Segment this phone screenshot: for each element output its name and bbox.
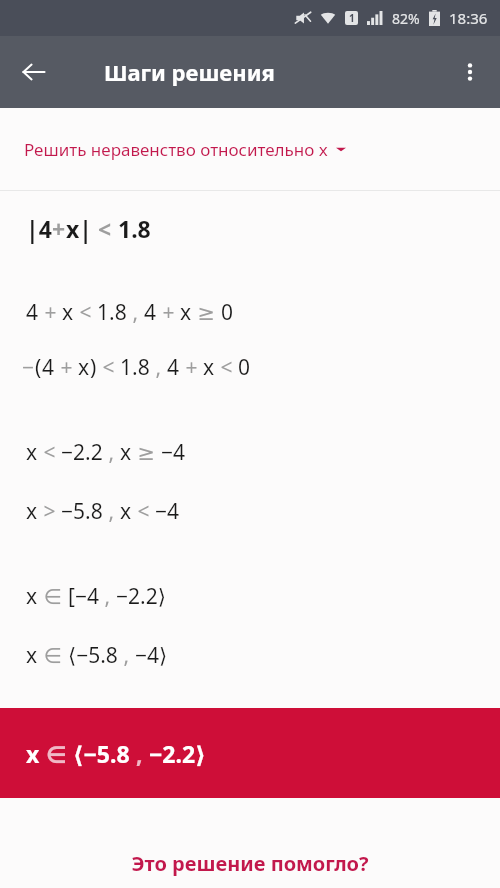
staticText: x — [203, 353, 215, 382]
staticText: 4 — [144, 298, 157, 327]
staticText: 1.8 — [97, 298, 127, 327]
staticText: < — [132, 497, 155, 526]
staticText: + — [55, 353, 78, 382]
staticText: 1 — [349, 11, 355, 25]
staticText: Решить неравенство относительно x — [24, 138, 328, 161]
staticText: < — [92, 213, 118, 244]
staticText: 18:36 — [449, 8, 488, 28]
button[interactable]: More options — [448, 50, 492, 94]
button[interactable]: Back — [12, 50, 56, 94]
staticText: < — [97, 353, 120, 382]
staticText: + — [180, 353, 203, 382]
staticText: ∈ — [38, 641, 68, 670]
staticText: x — [26, 738, 40, 769]
staticText: −5.8 — [61, 497, 103, 526]
staticText: −4 — [161, 438, 186, 467]
staticText: x — [26, 582, 38, 611]
staticText: + — [157, 298, 180, 327]
staticText: , — [130, 738, 149, 769]
staticText: Шаги решения — [104, 57, 275, 87]
staticText: + — [52, 213, 66, 244]
staticText: − — [22, 353, 35, 382]
button[interactable]: x — [0, 708, 500, 798]
staticText: ⟨−5.8 — [68, 641, 118, 670]
staticText: −4 — [155, 497, 180, 526]
staticText: < — [215, 353, 238, 382]
staticText: , — [127, 298, 144, 327]
staticText: x — [180, 298, 192, 327]
staticText: −4⟩ — [135, 641, 168, 670]
staticText: ≥ — [132, 438, 161, 467]
staticText: , — [150, 353, 167, 382]
staticText: < — [38, 438, 61, 467]
staticText: 1.8 — [120, 353, 150, 382]
staticText: −2.2 — [61, 438, 103, 467]
staticText: 4 — [42, 353, 55, 382]
staticText: , — [103, 438, 120, 467]
staticText: ) — [90, 353, 97, 382]
staticText: ∈ — [40, 738, 73, 769]
staticText: x — [62, 298, 74, 327]
staticText: x — [120, 497, 132, 526]
staticText: 4 — [167, 353, 180, 382]
staticText: x| — [66, 213, 92, 244]
staticText: −2.2⟩ — [149, 738, 206, 769]
staticText: x — [78, 353, 90, 382]
staticText: 82% — [392, 9, 420, 28]
staticText: x — [26, 438, 38, 467]
staticText: ∈ — [38, 582, 68, 611]
staticText: x — [26, 497, 38, 526]
staticText: x — [26, 641, 38, 670]
staticText: 1.8 — [118, 213, 151, 244]
staticText: + — [39, 298, 62, 327]
staticText: 4 — [26, 298, 39, 327]
staticText: |4 — [26, 213, 52, 244]
staticText: −2.2⟩ — [116, 582, 166, 611]
staticText: [−4 — [68, 582, 99, 611]
staticText: > — [38, 497, 61, 526]
staticText: 0 — [221, 298, 234, 327]
staticText: , — [99, 582, 116, 611]
staticText: Это решение помогло? — [0, 850, 500, 877]
staticText: ( — [35, 353, 42, 382]
staticText: ≥ — [192, 298, 221, 327]
staticText: ⟨−5.8 — [73, 738, 130, 769]
staticText: x — [120, 438, 132, 467]
staticText: , — [118, 641, 135, 670]
staticText: , — [103, 497, 120, 526]
staticText: 0 — [238, 353, 251, 382]
button[interactable]: Решить неравенство относительно x — [0, 108, 500, 190]
staticText: < — [74, 298, 97, 327]
